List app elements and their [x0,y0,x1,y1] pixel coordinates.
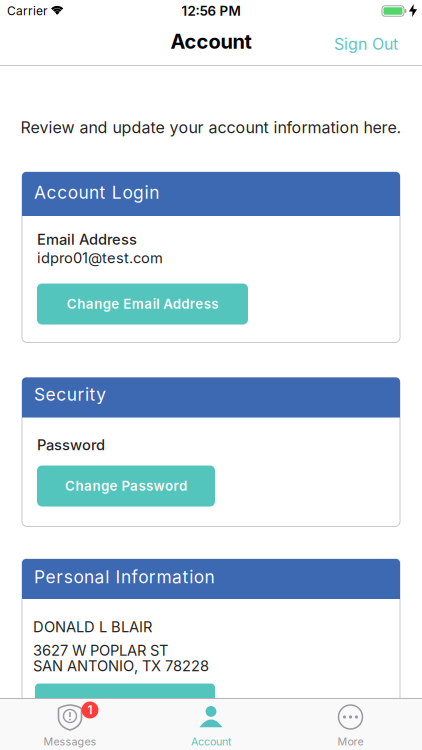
staticText: Account [191,735,231,748]
staticText: SAN ANTONIO, TX 78228 [33,657,209,675]
button[interactable]: Update Personal Information [35,683,215,698]
staticText: Change Password [65,478,187,494]
staticText: Account [170,30,251,53]
staticText: Personal Information [34,567,214,587]
button[interactable]: Messages [0,698,140,750]
staticText: Carrier [7,4,48,18]
staticText: Email Address [37,231,137,248]
staticText: Sign Out [334,35,398,53]
staticText: More [337,735,363,748]
button[interactable]: Change Password [37,465,215,506]
staticText: 12:56 PM [181,3,240,19]
staticText: 1 [87,703,92,717]
button[interactable]: Account [141,698,281,750]
staticText: Review and update your account informati… [20,118,401,137]
staticText: idpro01@test.com [37,249,163,267]
button[interactable]: Change Email Address [37,283,248,324]
staticText: Account Login [34,182,159,203]
staticText: Security [34,384,106,405]
staticText: Password [37,436,105,454]
staticText: 3627 W POPLAR ST [33,642,168,659]
button[interactable]: More [281,698,421,750]
staticText: DONALD L BLAIR [33,618,152,636]
staticText: Change Email Address [67,296,218,312]
staticText: Messages [43,735,96,748]
button[interactable]: Sign Out [334,35,398,53]
